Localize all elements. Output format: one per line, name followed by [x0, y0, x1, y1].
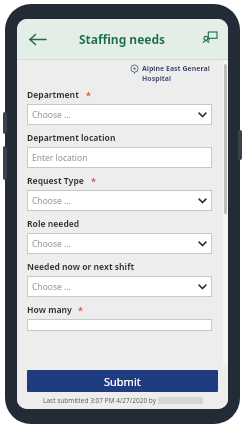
button[interactable]: [27, 319, 212, 331]
staticText: Choose ...: [32, 238, 71, 250]
button[interactable]: Back: [24, 26, 50, 52]
staticText: Needed now or next shift: [27, 261, 135, 273]
button[interactable]: Choose ...: [27, 104, 212, 125]
staticText: Staffing needs: [79, 31, 166, 47]
staticText: Enter location: [32, 152, 88, 164]
button[interactable]: Submit: [27, 370, 218, 392]
button[interactable]: Choose ...: [27, 276, 212, 297]
button[interactable]: Choose ...: [27, 233, 212, 254]
staticText: Submit: [104, 374, 141, 389]
staticText: Alpine East General: [142, 64, 210, 74]
staticText: Hospital: [142, 74, 172, 84]
staticText: Request Type: [27, 175, 84, 187]
staticText: *: [86, 89, 91, 101]
staticText: Last submitted 3:07 PM 4/27/2020 by: [43, 396, 156, 405]
staticText: Choose ...: [32, 195, 71, 207]
staticText: *: [91, 175, 96, 187]
button[interactable]: Choose ...: [27, 190, 212, 211]
staticText: Choose ...: [32, 109, 71, 121]
staticText: Choose ...: [32, 281, 71, 293]
button[interactable]: Enter location: [27, 147, 212, 168]
staticText: Role needed: [27, 218, 80, 230]
staticText: *: [78, 304, 83, 316]
staticText: Department: [27, 89, 79, 101]
button[interactable]: Contacts: [197, 27, 221, 51]
staticText: Department location: [27, 132, 116, 144]
staticText: How many: [27, 304, 72, 316]
